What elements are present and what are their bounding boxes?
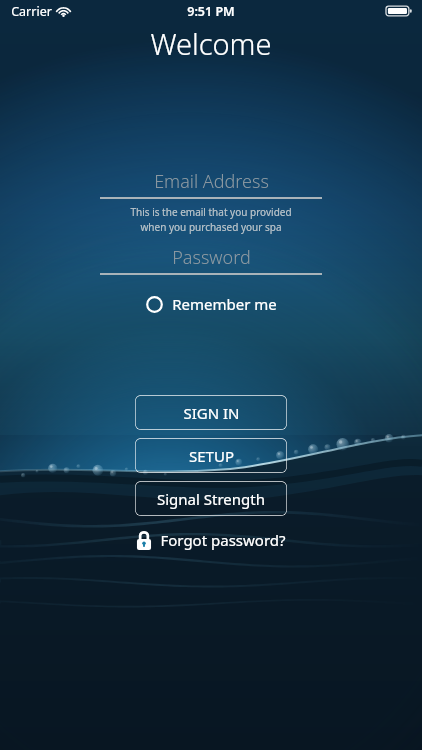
staticText: Signal Strength [157, 489, 265, 509]
button[interactable]: Password [100, 244, 322, 275]
button[interactable]: SIGN IN [135, 395, 287, 430]
staticText: SIGN IN [183, 403, 240, 423]
button[interactable]: Email Address [100, 168, 322, 199]
staticText: when you purchased your spa [140, 220, 282, 234]
staticText: Carrier [11, 3, 52, 20]
staticText: Email Address [154, 169, 269, 194]
button[interactable]: Forgot password? [130, 527, 292, 553]
staticText: Forgot password? [160, 530, 286, 550]
staticText: Welcome [150, 24, 272, 63]
button[interactable]: SETUP [135, 438, 287, 473]
staticText: SETUP [189, 446, 234, 466]
staticText: This is the email that you provided [130, 205, 292, 219]
staticText: 9:51 PM [187, 3, 235, 20]
staticText: Password [172, 245, 251, 270]
button[interactable]: Signal Strength [135, 481, 287, 516]
staticText: Remember me [172, 294, 277, 314]
button[interactable]: Remember me [142, 291, 281, 317]
